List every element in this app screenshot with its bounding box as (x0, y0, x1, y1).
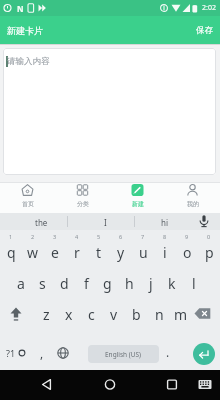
button[interactable]: p (198, 242, 220, 262)
button[interactable]: a (10, 273, 32, 293)
button[interactable]: b (125, 304, 147, 324)
staticText: 2:02 (202, 3, 216, 13)
button[interactable] (96, 371, 124, 399)
button[interactable]: u (132, 242, 154, 262)
button[interactable] (2, 303, 30, 325)
staticText: o (183, 243, 192, 262)
staticText: I (104, 217, 107, 228)
button[interactable] (194, 373, 218, 397)
staticText: 5 (97, 233, 101, 240)
button[interactable]: o (176, 242, 198, 262)
button[interactable] (67, 213, 134, 230)
staticText: ?1 (6, 347, 16, 359)
button[interactable]: q (0, 242, 22, 262)
button[interactable] (189, 303, 217, 325)
staticText: l (192, 274, 196, 293)
staticText: . (166, 344, 170, 360)
button[interactable]: y (110, 242, 132, 262)
staticText: e (51, 243, 59, 262)
button[interactable]: j (140, 273, 162, 293)
staticText: n (155, 305, 164, 324)
staticText: t (96, 243, 102, 262)
button[interactable]: h (118, 273, 140, 293)
button[interactable] (192, 213, 220, 230)
button[interactable] (2, 183, 53, 212)
staticText: 6 (119, 233, 123, 240)
staticText: d (60, 274, 69, 293)
staticText: x (65, 305, 73, 324)
button[interactable] (3, 48, 216, 175)
staticText: 分类 (77, 200, 89, 208)
staticText: 首页 (22, 200, 34, 208)
button[interactable]: . (161, 344, 175, 360)
button[interactable] (134, 213, 186, 230)
staticText: y (117, 243, 125, 262)
staticText: b (132, 305, 141, 324)
staticText: 9 (185, 233, 189, 240)
staticText: 新建卡片 (7, 25, 43, 36)
staticText: 请输入内容 (7, 56, 50, 67)
staticText: p (205, 243, 214, 262)
staticText: 新建 (132, 200, 144, 208)
staticText: 0 (207, 233, 211, 240)
button[interactable]: l (183, 273, 205, 293)
button[interactable] (167, 183, 218, 212)
button[interactable] (33, 371, 61, 399)
staticText: , (40, 345, 44, 361)
staticText: g (103, 274, 112, 293)
staticText: 我的 (187, 200, 199, 208)
button[interactable]: k (161, 273, 183, 293)
button[interactable] (193, 343, 215, 365)
staticText: 8 (163, 233, 167, 240)
button[interactable] (57, 183, 108, 212)
button[interactable] (158, 371, 186, 399)
button[interactable]: n (148, 304, 170, 324)
staticText: u (139, 243, 148, 262)
staticText: English (US) (105, 350, 142, 359)
staticText: z (43, 305, 50, 324)
button[interactable]: i (154, 242, 176, 262)
staticText: j (149, 274, 153, 293)
button[interactable]: c (80, 304, 102, 324)
staticText: hi (161, 217, 169, 228)
button[interactable]: , (35, 345, 49, 361)
staticText: f (84, 274, 89, 293)
button[interactable]: English (US) (88, 345, 159, 363)
button[interactable] (112, 183, 163, 212)
staticText: v (110, 305, 118, 324)
button[interactable]: x (58, 304, 80, 324)
staticText: a (17, 274, 25, 293)
button[interactable]: e (44, 242, 66, 262)
staticText: 3 (53, 233, 57, 240)
staticText: 2 (31, 233, 35, 240)
staticText: k (168, 274, 176, 293)
button[interactable]: 保存 (189, 22, 219, 38)
staticText: 1 (9, 233, 13, 240)
button[interactable]: s (31, 273, 53, 293)
button[interactable] (52, 343, 74, 363)
staticText: w (27, 243, 39, 262)
button[interactable]: g (96, 273, 118, 293)
staticText: the (35, 217, 48, 228)
staticText: r (74, 243, 80, 262)
button[interactable]: m (170, 304, 192, 324)
staticText: i (163, 243, 167, 262)
button[interactable]: w (22, 242, 44, 262)
button[interactable] (0, 213, 67, 230)
button[interactable]: d (53, 273, 75, 293)
button[interactable]: v (103, 304, 125, 324)
button[interactable]: r (66, 242, 88, 262)
staticText: h (125, 274, 134, 293)
button[interactable]: f (75, 273, 97, 293)
staticText: c (88, 305, 95, 324)
button[interactable]: t (88, 242, 110, 262)
button[interactable] (2, 343, 28, 363)
staticText: q (7, 243, 16, 262)
staticText: m (174, 305, 188, 324)
button[interactable]: z (35, 304, 57, 324)
staticText: N (17, 3, 24, 14)
staticText: 7 (141, 233, 145, 240)
staticText: s (39, 274, 46, 293)
staticText: 4 (75, 233, 79, 240)
staticText: 保存 (196, 25, 213, 36)
